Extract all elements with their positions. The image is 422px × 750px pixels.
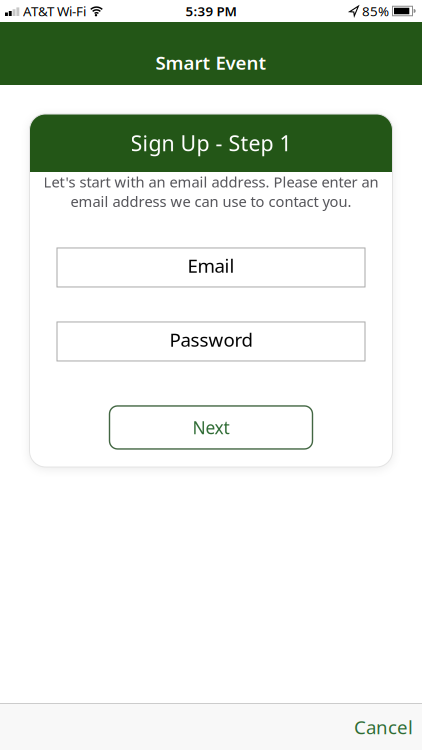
- staticText: 85%: [362, 2, 389, 20]
- staticText: Password: [169, 327, 252, 352]
- staticText: Cancel: [354, 715, 413, 739]
- button[interactable]: Email: [57, 248, 365, 287]
- staticText: Email: [187, 253, 234, 278]
- staticText: 5:39 PM: [185, 2, 236, 20]
- staticText: AT&T Wi-Fi: [23, 2, 86, 20]
- staticText: Sign Up - Step 1: [130, 129, 291, 157]
- staticText: Let's start with an email address. Pleas…: [43, 172, 378, 191]
- button[interactable]: Next: [109, 406, 312, 449]
- button[interactable]: Cancel: [354, 715, 413, 739]
- staticText: Next: [192, 416, 229, 439]
- staticText: email address we can use to contact you.: [70, 191, 351, 211]
- staticText: Smart Event: [155, 50, 266, 75]
- button[interactable]: Password: [57, 322, 365, 361]
